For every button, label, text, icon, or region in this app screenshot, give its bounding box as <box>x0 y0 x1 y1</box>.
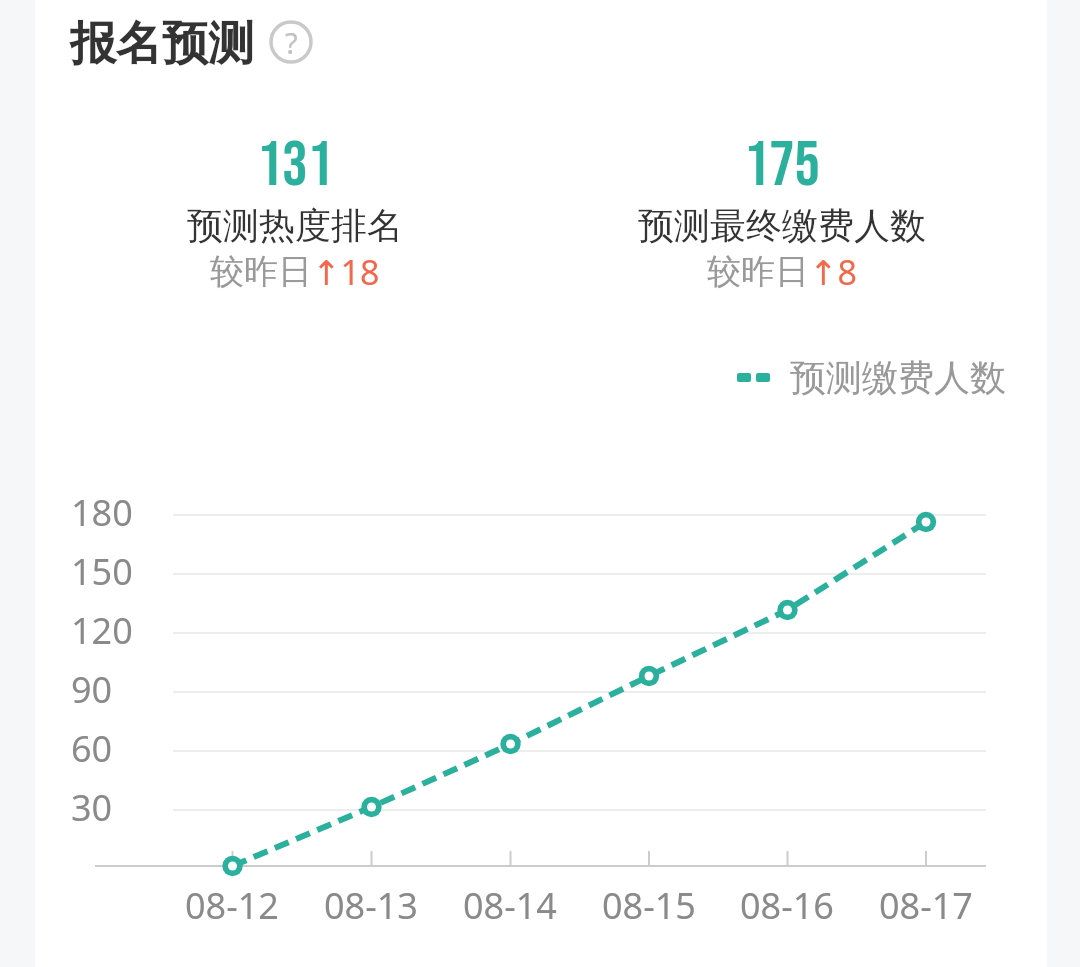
staticText: ↑8 <box>809 249 857 293</box>
staticText: 较昨日 <box>707 250 809 293</box>
staticText: 120 <box>71 606 133 650</box>
staticText: 08-14 <box>463 881 557 923</box>
staticText: 08-13 <box>324 881 418 923</box>
staticText: 150 <box>71 547 133 591</box>
button[interactable]: 预测缴费人数 <box>737 355 1006 399</box>
staticText: 较昨日 <box>210 250 312 293</box>
staticText: 175 <box>744 128 820 202</box>
staticText: 预测缴费人数 <box>790 355 1006 399</box>
staticText: 08-15 <box>602 881 696 923</box>
staticText: 预测热度排名 <box>187 203 403 248</box>
button[interactable]: ? <box>269 20 313 64</box>
staticText: 131 <box>257 128 333 202</box>
staticText: 08-17 <box>879 881 973 923</box>
staticText: 预测最终缴费人数 <box>638 203 926 248</box>
staticText: 30 <box>71 783 113 827</box>
staticText: 90 <box>71 665 113 709</box>
staticText: 08-16 <box>740 881 834 923</box>
staticText: 60 <box>71 724 113 768</box>
staticText: 08-12 <box>185 881 279 923</box>
staticText: ? <box>285 23 298 62</box>
staticText: 报名预测 <box>70 15 254 73</box>
staticText: 180 <box>71 488 133 532</box>
staticText: ↑18 <box>312 249 380 293</box>
